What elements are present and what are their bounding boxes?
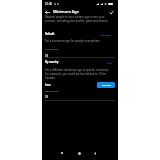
staticText: 18 — [45, 95, 49, 99]
staticText: Minimum age — [45, 48, 59, 51]
button[interactable]: Add — [106, 60, 113, 65]
staticText: Set a different minimum age in specific … — [45, 68, 113, 80]
staticText: Require people to be a certain age to us… — [45, 15, 111, 23]
staticText: Iran — [45, 83, 51, 87]
button[interactable]: Back — [91, 149, 99, 157]
button[interactable]: Home — [75, 149, 83, 157]
staticText: 10:45 — [45, 2, 53, 6]
staticText: Remove — [102, 84, 111, 87]
staticText: Minimum age — [45, 90, 59, 93]
staticText: Remove — [101, 33, 111, 36]
staticText: Default — [45, 32, 55, 35]
staticText: Minimum Age — [53, 9, 79, 14]
button[interactable]: Save — [107, 8, 115, 16]
button[interactable]: Remove — [97, 82, 115, 88]
staticText: 18 — [45, 54, 49, 58]
button[interactable]: Remove — [100, 32, 112, 37]
staticText: Add — [107, 61, 112, 64]
staticText: Set a minimum age for people everywhere. — [45, 39, 108, 43]
staticText: By country — [45, 60, 59, 63]
button[interactable]: Back — [43, 8, 51, 16]
button[interactable]: Recents — [58, 149, 66, 157]
